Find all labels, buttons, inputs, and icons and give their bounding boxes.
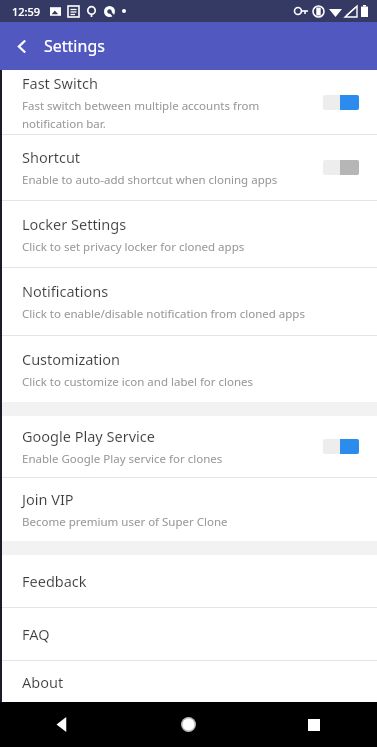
staticText: Notifications: [22, 281, 109, 301]
button[interactable]: Customization: [0, 336, 377, 402]
button[interactable]: Recent apps: [251, 702, 377, 747]
staticText: About: [22, 672, 64, 692]
button[interactable]: Enabled: [323, 95, 359, 110]
staticText: Settings: [44, 35, 105, 57]
button[interactable]: Google Play Service: [0, 416, 377, 477]
button[interactable]: Back: [0, 24, 44, 68]
button[interactable]: FAQ: [0, 608, 377, 660]
staticText: Fast Switch: [22, 73, 98, 93]
staticText: FAQ: [22, 624, 50, 644]
button[interactable]: Locker Settings: [0, 201, 377, 267]
button[interactable]: Shortcut: [0, 135, 377, 200]
button[interactable]: Join VIP: [0, 478, 377, 541]
staticText: Click to enable/disable notification fro…: [22, 306, 305, 322]
button[interactable]: Home: [125, 702, 251, 747]
staticText: Locker Settings: [22, 214, 127, 234]
button[interactable]: Disabled: [323, 160, 359, 175]
staticText: Feedback: [22, 571, 87, 591]
staticText: Enable to auto-add shortcut when cloning…: [22, 172, 278, 188]
staticText: Google Play Service: [22, 426, 155, 446]
button[interactable]: Enabled: [323, 439, 359, 454]
staticText: Customization: [22, 349, 121, 369]
staticText: Join VIP: [22, 489, 74, 509]
staticText: 12:59: [12, 4, 41, 19]
staticText: Click to customize icon and label for cl…: [22, 374, 254, 390]
staticText: Become premium user of Super Clone: [22, 514, 228, 530]
button[interactable]: About: [0, 661, 377, 702]
staticText: Fast switch between multiple accounts fr…: [22, 98, 260, 114]
button[interactable]: Notifications: [0, 268, 377, 335]
staticText: notification bar.: [22, 116, 106, 132]
staticText: Shortcut: [22, 147, 81, 167]
staticText: Enable Google Play service for clones: [22, 451, 223, 467]
button[interactable]: Fast Switch: [0, 70, 377, 134]
button[interactable]: Feedback: [0, 555, 377, 607]
staticText: Click to set privacy locker for cloned a…: [22, 239, 245, 255]
button[interactable]: Back: [0, 702, 125, 747]
